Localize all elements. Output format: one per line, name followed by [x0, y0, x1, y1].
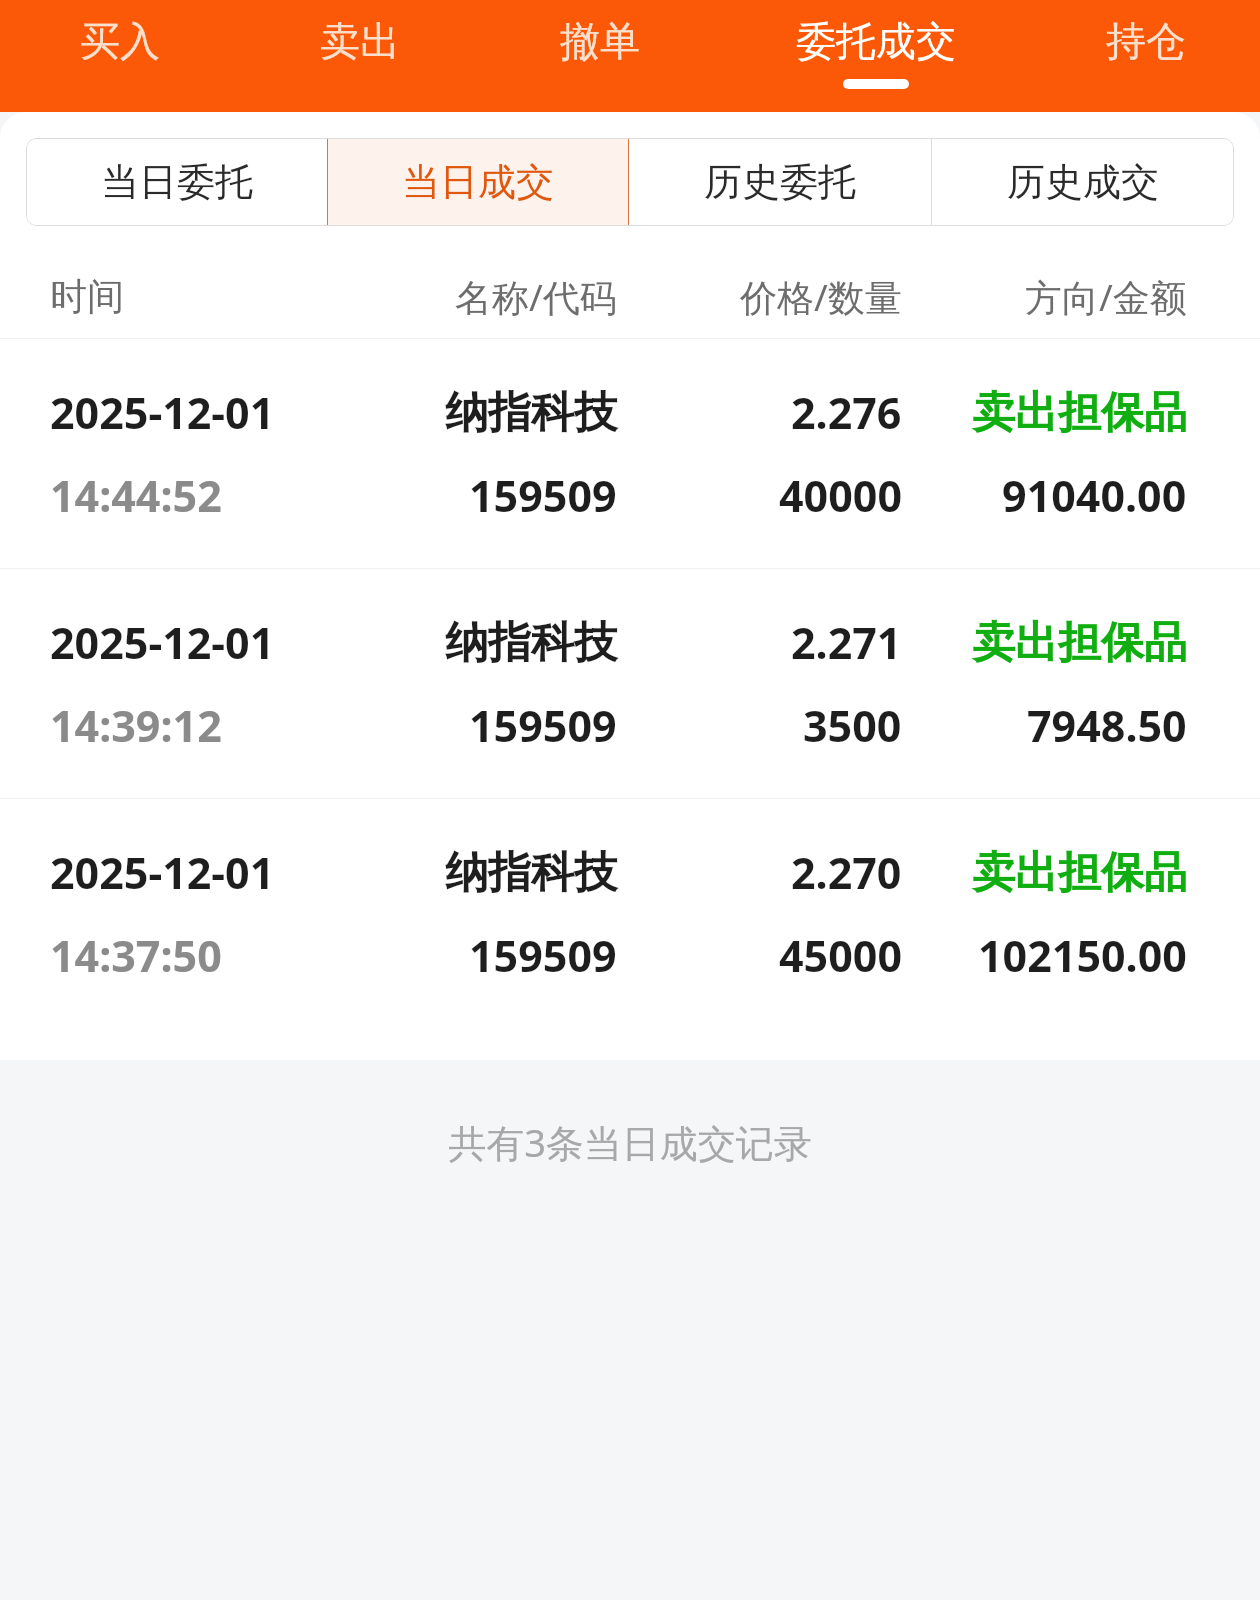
- staticText: 当日委托: [101, 158, 253, 206]
- staticText: 历史成交: [1007, 158, 1159, 206]
- staticText: 卖出担保品: [972, 616, 1187, 670]
- staticText: 共有3条当日成交记录: [0, 1116, 1260, 1168]
- staticText: 纳指科技: [445, 846, 617, 900]
- staticText: 102150.00: [978, 926, 1187, 985]
- staticText: 当日成交: [402, 158, 554, 206]
- staticText: 卖出: [320, 16, 400, 66]
- staticText: 持仓: [1106, 16, 1186, 66]
- staticText: 卖出担保品: [972, 386, 1187, 440]
- button[interactable]: 买入: [0, 0, 240, 112]
- button[interactable]: 持仓: [1032, 0, 1260, 112]
- staticText: 91040.00: [1002, 466, 1187, 525]
- staticText: 14:44:52: [50, 466, 222, 525]
- button[interactable]: 2025-12-01: [0, 569, 1260, 798]
- button[interactable]: 当日委托: [26, 138, 327, 226]
- staticText: 方向/金额: [1025, 271, 1187, 322]
- button[interactable]: 撤单: [480, 0, 720, 112]
- button[interactable]: 2025-12-01: [0, 799, 1260, 1028]
- staticText: 历史委托: [704, 158, 856, 206]
- button[interactable]: 委托成交: [720, 0, 1032, 112]
- button[interactable]: 历史委托: [629, 138, 931, 226]
- staticText: 名称/代码: [455, 271, 617, 322]
- button[interactable]: 当日成交: [327, 138, 629, 226]
- staticText: 2025-12-01: [50, 843, 275, 902]
- staticText: 3500: [803, 696, 902, 755]
- staticText: 40000: [779, 466, 902, 525]
- staticText: 2.271: [791, 613, 902, 672]
- staticText: 纳指科技: [445, 616, 617, 670]
- staticText: 2.270: [791, 843, 902, 902]
- staticText: 2025-12-01: [50, 383, 275, 442]
- staticText: 7948.50: [1027, 696, 1187, 755]
- staticText: 45000: [779, 926, 902, 985]
- button[interactable]: 卖出: [240, 0, 480, 112]
- staticText: 159509: [469, 696, 617, 755]
- staticText: 159509: [469, 926, 617, 985]
- staticText: 买入: [80, 16, 160, 66]
- staticText: 委托成交: [796, 16, 956, 66]
- staticText: 159509: [469, 466, 617, 525]
- staticText: 14:37:50: [50, 926, 222, 985]
- button[interactable]: 历史成交: [932, 138, 1234, 226]
- staticText: 价格/数量: [740, 271, 902, 322]
- staticText: 纳指科技: [445, 386, 617, 440]
- staticText: 2.276: [791, 383, 902, 442]
- staticText: 2025-12-01: [50, 613, 275, 672]
- staticText: 时间: [50, 273, 124, 320]
- staticText: 卖出担保品: [972, 846, 1187, 900]
- button[interactable]: 2025-12-01: [0, 339, 1260, 568]
- staticText: 撤单: [560, 16, 640, 66]
- staticText: 14:39:12: [50, 696, 222, 755]
